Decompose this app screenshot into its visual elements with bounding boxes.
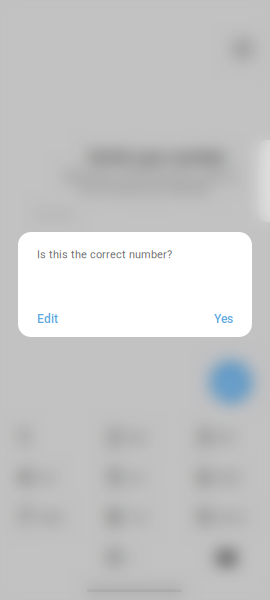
- button[interactable]: 9: [180, 498, 270, 538]
- staticText: 7: [18, 505, 30, 530]
- button[interactable]: 6: [180, 458, 270, 498]
- staticText: 0: [108, 545, 120, 570]
- staticText: Is this the correct number?: [37, 248, 172, 261]
- staticText: Verify your number: [88, 148, 227, 167]
- button[interactable]: 5: [90, 458, 180, 498]
- button[interactable]: Yes: [173, 304, 252, 334]
- staticText: Yes: [214, 312, 233, 326]
- button[interactable]: 1: [0, 418, 90, 458]
- button[interactable]: 7: [0, 498, 90, 538]
- staticText: Edit: [37, 312, 58, 326]
- button[interactable]: 4: [0, 458, 90, 498]
- staticText: 3: [198, 425, 210, 450]
- staticText: 8: [108, 505, 120, 530]
- button[interactable]: Edit: [18, 304, 97, 334]
- staticText: 6: [198, 465, 210, 490]
- button[interactable]: 2: [90, 418, 180, 458]
- button[interactable]: 3: [180, 418, 270, 458]
- button[interactable]: Delete: [180, 538, 270, 578]
- staticText: 4: [18, 465, 30, 490]
- staticText: 5: [108, 465, 120, 490]
- button[interactable]: 0: [90, 538, 180, 578]
- staticText: 9: [198, 505, 210, 530]
- button[interactable]: 8: [90, 498, 180, 538]
